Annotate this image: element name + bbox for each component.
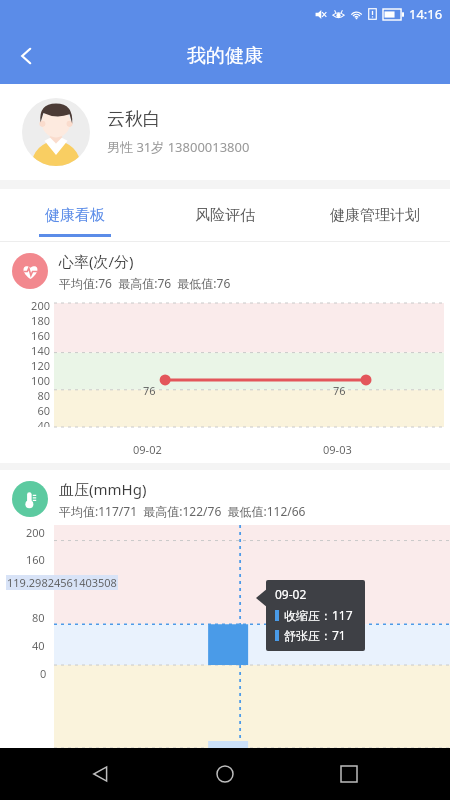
- staticText: 76: [333, 383, 346, 398]
- button[interactable]: 云秋白: [0, 84, 450, 180]
- staticText: 收缩压：117: [284, 607, 353, 623]
- staticText: 200: [22, 298, 50, 313]
- button[interactable]: 健康看板: [0, 189, 150, 241]
- button[interactable]: 心率(次/分): [0, 242, 450, 291]
- staticText: 09-02: [275, 586, 307, 602]
- button[interactable]: 健康管理计划: [300, 189, 450, 241]
- staticText: 09-03: [323, 442, 352, 457]
- staticText: 40: [32, 638, 45, 653]
- staticText: 160: [22, 328, 50, 343]
- staticText: 76: [143, 383, 156, 398]
- staticText: 100: [22, 373, 50, 388]
- staticText: 0: [40, 666, 47, 681]
- staticText: 舒张压：71: [284, 627, 346, 643]
- staticText: 160: [26, 552, 45, 567]
- staticText: 心率(次/分): [59, 251, 134, 271]
- staticText: 140: [22, 343, 50, 358]
- staticText: 云秋白: [107, 108, 161, 131]
- staticText: 09-02: [133, 442, 162, 457]
- staticText: 平均值:76 最高值:76 最低值:76: [59, 275, 231, 291]
- button[interactable]: Home: [202, 751, 248, 797]
- button[interactable]: Back: [4, 33, 50, 79]
- staticText: 180: [22, 313, 50, 328]
- staticText: 健康看板: [45, 206, 105, 225]
- staticText: 60: [22, 403, 50, 418]
- staticText: 80: [22, 388, 50, 403]
- staticText: 14:16: [409, 5, 443, 23]
- staticText: 我的健康: [187, 44, 263, 68]
- staticText: 120: [22, 358, 50, 373]
- staticText: 血压(mmHg): [59, 479, 147, 499]
- staticText: 风险评估: [195, 206, 255, 225]
- staticText: 健康管理计划: [330, 206, 420, 225]
- staticText: 200: [26, 525, 45, 540]
- staticText: 平均值:117/71 最高值:122/76 最低值:112/66: [59, 503, 306, 519]
- button[interactable]: Recent apps: [326, 751, 372, 797]
- button[interactable]: 风险评估: [150, 189, 300, 241]
- staticText: 119.29824561403508: [7, 575, 117, 590]
- button[interactable]: 血压(mmHg): [0, 470, 450, 519]
- staticText: 40: [22, 418, 50, 427]
- staticText: 80: [32, 610, 45, 625]
- button[interactable]: Back: [78, 751, 124, 797]
- staticText: 男性 31岁 13800013800: [107, 138, 250, 156]
